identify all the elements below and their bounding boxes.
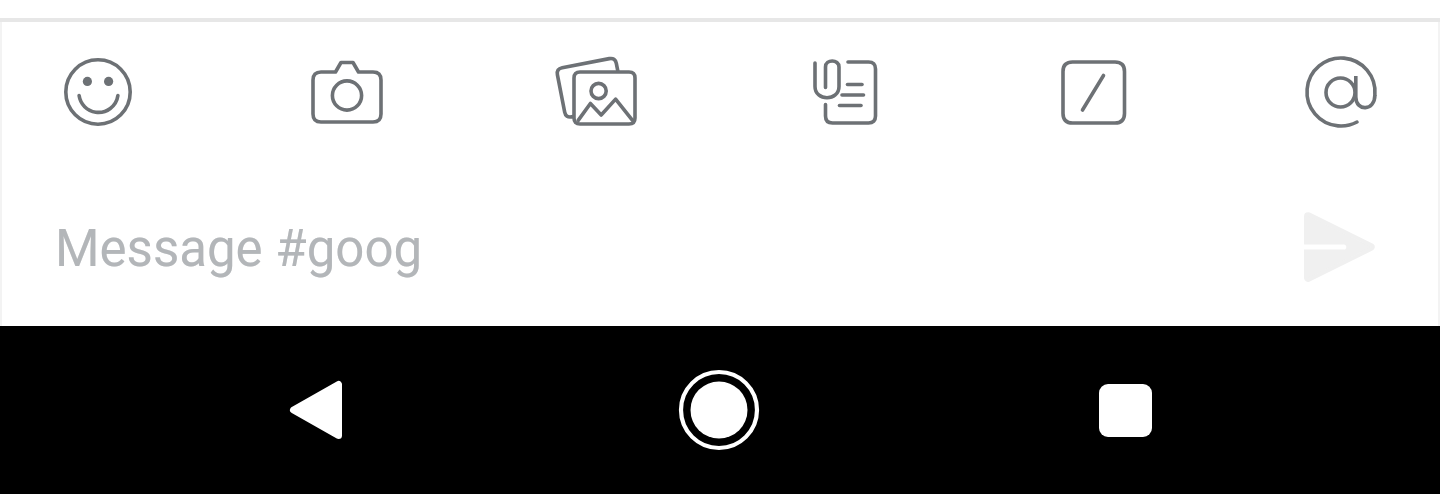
button[interactable]: Emoji (40, 34, 156, 150)
button[interactable]: Recent apps (1045, 326, 1205, 494)
button[interactable]: Attach file (786, 34, 902, 150)
button[interactable]: Home (639, 326, 799, 494)
button[interactable]: Camera (289, 34, 405, 150)
staticText: Message #goog (55, 219, 423, 279)
button[interactable]: Back (236, 326, 396, 494)
button[interactable]: Slash command (1034, 34, 1150, 150)
button[interactable]: Mention someone (1283, 34, 1399, 150)
button[interactable]: Message #goog (0, 160, 1272, 326)
button[interactable]: Photo library (537, 34, 653, 150)
button[interactable]: Send message (1272, 160, 1440, 326)
